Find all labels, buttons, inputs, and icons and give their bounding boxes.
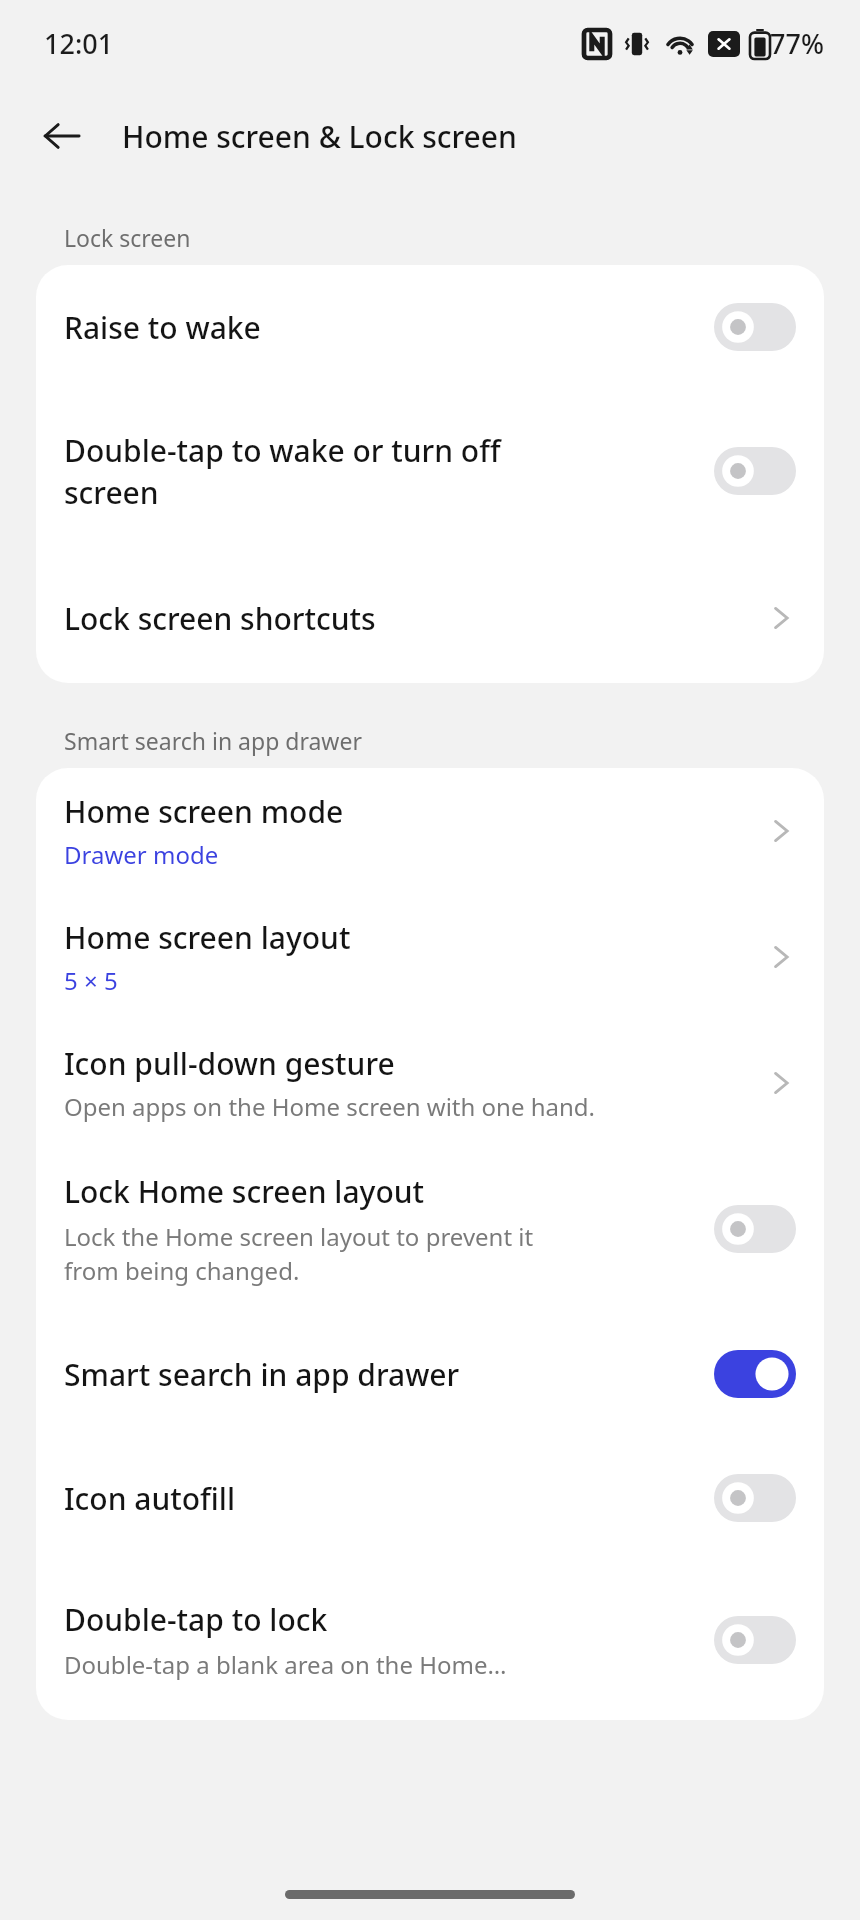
staticText: Home screen layout — [64, 917, 351, 958]
button[interactable]: Home screen layout — [36, 894, 824, 1020]
staticText: Smart search in app drawer — [64, 1354, 460, 1395]
staticText: Home screen mode — [64, 791, 344, 832]
staticText: Double-tap a blank area on the Home… — [64, 1648, 507, 1681]
button[interactable]: Double-tap to lock — [36, 1560, 824, 1720]
button[interactable]: Double-tap to wake or turn off screen — [36, 389, 824, 553]
button[interactable]: Icon pull-down gesture — [36, 1020, 824, 1146]
staticText: Double-tap to wake or turn off screen — [64, 430, 501, 513]
staticText: Home screen & Lock screen — [122, 116, 517, 157]
staticText: Icon autofill — [64, 1478, 236, 1519]
staticText: Raise to wake — [64, 307, 261, 348]
staticText: 5 × 5 — [64, 964, 118, 997]
staticText: Lock the Home screen layout to prevent i… — [64, 1220, 534, 1287]
staticText: Smart search in app drawer — [64, 725, 362, 756]
button[interactable]: Lock screen shortcuts — [36, 553, 824, 683]
staticText: 77% — [770, 25, 824, 62]
staticText: Double-tap to lock — [64, 1599, 328, 1640]
button[interactable]: Smart search in app drawer — [36, 1312, 824, 1436]
button[interactable]: Icon autofill — [36, 1436, 824, 1560]
staticText: Drawer mode — [64, 838, 219, 871]
button[interactable]: Lock Home screen layout — [36, 1146, 824, 1312]
staticText: Open apps on the Home screen with one ha… — [64, 1090, 596, 1123]
staticText: Icon pull-down gesture — [64, 1043, 395, 1084]
button[interactable]: Home screen mode — [36, 768, 824, 894]
staticText: Lock Home screen layout — [64, 1171, 425, 1212]
button[interactable]: Back — [24, 98, 100, 174]
staticText: Lock screen — [64, 222, 191, 253]
staticText: Lock screen shortcuts — [64, 598, 376, 639]
staticText: 12:01 — [44, 25, 114, 62]
button[interactable]: Raise to wake — [36, 265, 824, 389]
